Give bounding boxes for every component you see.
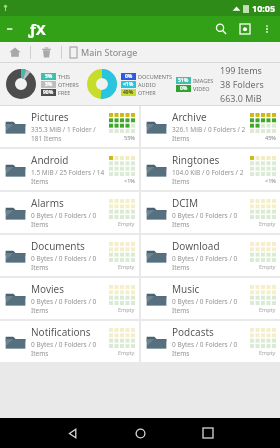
button[interactable]: Trash [31, 42, 61, 62]
staticText: Empty [259, 263, 276, 270]
staticText: Ringtones [172, 153, 220, 167]
staticText: Empty [259, 306, 276, 313]
staticText: 0% [180, 85, 188, 92]
staticText: Empty [118, 220, 135, 227]
button[interactable]: Documents [0, 235, 139, 276]
staticText: 0 Bytes / 0 Folders / 0 Items [172, 340, 248, 358]
staticText: Empty [118, 263, 135, 270]
staticText: VIDEO [193, 85, 210, 92]
staticText: 10:05 [252, 2, 276, 14]
staticText: 5% [45, 81, 53, 88]
button[interactable]: Search [209, 17, 233, 41]
staticText: Download [172, 239, 220, 253]
staticText: Main Storage [81, 46, 138, 58]
staticText: FREE [58, 89, 71, 96]
button[interactable]: Recent apps [186, 418, 230, 448]
button[interactable]: DCIM [141, 192, 280, 233]
staticText: DCIM [172, 196, 199, 210]
staticText: <1% [123, 81, 134, 88]
staticText: 55% [124, 134, 135, 141]
staticText: 38 Folders [220, 78, 264, 90]
staticText: 0 Bytes / 0 Folders / 0 Items [31, 254, 107, 272]
staticText: Archive [172, 110, 207, 124]
staticText: Notifications [31, 325, 91, 339]
button[interactable]: Podcasts [141, 321, 280, 362]
staticText: Empty [259, 220, 276, 227]
staticText: Podcasts [172, 325, 214, 339]
button[interactable]: Navigate up [2, 18, 24, 40]
button[interactable]: New window [233, 17, 257, 41]
staticText: <1% [124, 177, 135, 184]
staticText: AUDIO [138, 81, 156, 88]
staticText: 663.0 MiB [220, 92, 262, 104]
staticText: Movies [31, 282, 65, 296]
staticText: Music [172, 282, 200, 296]
staticText: 0 Bytes / 0 Folders / 0 Items [31, 297, 107, 315]
staticText: Documents [31, 239, 85, 253]
staticText: THIS [58, 73, 71, 80]
staticText: Alarms [31, 196, 64, 210]
staticText: 199 Items [220, 64, 262, 76]
staticText: 45% [265, 134, 276, 141]
button[interactable]: Ringtones [141, 149, 280, 190]
staticText: 49% [123, 89, 134, 96]
staticText: 0 Bytes / 0 Folders / 0 Items [172, 211, 248, 229]
button[interactable]: Download [141, 235, 280, 276]
staticText: OTHER [138, 89, 156, 96]
staticText: Pictures [31, 110, 69, 124]
staticText: 0 Bytes / 0 Folders / 0 Items [31, 211, 107, 229]
button[interactable]: Movies [0, 278, 139, 319]
staticText: 335.3 MiB / 1 Folder / 181 Items [31, 125, 107, 143]
staticText: 90% [43, 89, 54, 96]
staticText: 0 Bytes / 0 Folders / 0 Items [172, 297, 248, 315]
staticText: Android [31, 153, 69, 167]
staticText: IMAGES [193, 77, 214, 84]
staticText: Empty [118, 306, 135, 313]
button[interactable]: Main Storage [62, 42, 138, 62]
button[interactable]: Home [118, 418, 162, 448]
staticText: ƒX [28, 19, 46, 39]
button[interactable]: Notifications [0, 321, 139, 362]
staticText: Empty [118, 349, 135, 356]
staticText: 104.0 KiB / 0 Folders / 2 Items [172, 168, 248, 186]
button[interactable]: Alarms [0, 192, 139, 233]
staticText: OTHERS [58, 81, 79, 88]
staticText: 326.1 MiB / 0 Folders / 2 Items [172, 125, 248, 143]
staticText: 0 Bytes / 0 Folders / 0 Items [172, 254, 248, 272]
staticText: 1.5 MiB / 25 Folders / 14 Items [31, 168, 107, 186]
button[interactable]: Pictures [0, 106, 139, 147]
staticText: Empty [259, 349, 276, 356]
staticText: 51% [178, 77, 189, 84]
staticText: 0% [125, 73, 133, 80]
button[interactable]: Music [141, 278, 280, 319]
staticText: <1% [265, 177, 276, 184]
staticText: DOCUMENTS [138, 73, 173, 80]
button[interactable]: Android [0, 149, 139, 190]
button[interactable]: Home [0, 42, 30, 62]
staticText: 0 Bytes / 0 Folders / 0 Items [31, 340, 107, 358]
button[interactable]: More options [257, 19, 277, 39]
staticText: 5% [45, 73, 53, 80]
button[interactable]: Back [50, 418, 94, 448]
button[interactable]: Archive [141, 106, 280, 147]
